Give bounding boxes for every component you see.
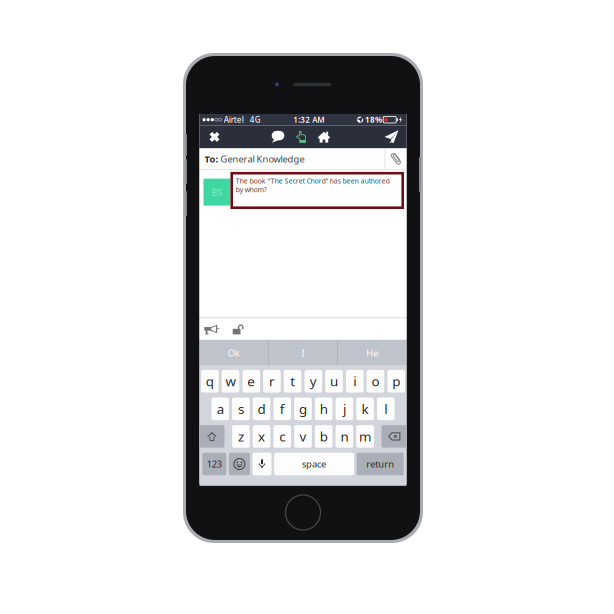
staticText: p (392, 372, 400, 390)
staticText: o (371, 372, 379, 390)
button[interactable]: z (232, 425, 250, 448)
button[interactable]: j (336, 397, 353, 420)
button[interactable]: o (367, 370, 384, 392)
button[interactable]: d (253, 397, 270, 420)
button[interactable]: He (338, 340, 406, 366)
staticText: 1:32 AM (293, 114, 324, 125)
button[interactable]: s (232, 397, 250, 420)
button[interactable]: Attach (385, 148, 406, 169)
staticText: g (299, 400, 307, 418)
button[interactable]: Close (201, 125, 227, 148)
button[interactable]: v (294, 425, 312, 448)
staticText: x (258, 427, 265, 445)
button[interactable]: Ok (200, 340, 268, 366)
staticText: e (247, 372, 255, 390)
button[interactable]: Delete (381, 425, 407, 448)
staticText: r (269, 372, 275, 390)
staticText: space (302, 458, 326, 470)
staticText: t (290, 372, 295, 390)
button[interactable]: h (315, 397, 332, 420)
button[interactable]: Broadcast (202, 319, 221, 340)
staticText: w (226, 372, 236, 390)
button[interactable]: space (274, 453, 354, 475)
button[interactable]: a (211, 397, 229, 420)
staticText: c (279, 427, 285, 445)
staticText: h (320, 400, 328, 418)
button[interactable]: g (294, 397, 312, 420)
staticText: j (343, 400, 346, 418)
button[interactable]: f (273, 397, 291, 420)
staticText: To: (204, 153, 218, 165)
staticText: The book “The Secret Chord” has been aut… (236, 176, 390, 194)
staticText: General Knowledge (218, 153, 304, 165)
button[interactable]: Like (289, 125, 312, 148)
staticText: He (366, 347, 378, 359)
staticText: a (217, 400, 224, 418)
button[interactable]: p (387, 370, 405, 392)
button[interactable]: return (357, 453, 404, 475)
button[interactable]: 123 (202, 453, 226, 475)
staticText: f (280, 400, 285, 418)
button[interactable]: l (377, 397, 395, 420)
staticText: 4G (250, 114, 261, 125)
staticText: 18% (365, 114, 382, 125)
staticText: m (359, 427, 371, 445)
button[interactable]: Emoji (229, 453, 250, 475)
staticText: y (310, 372, 317, 390)
staticText: return (366, 458, 394, 470)
button[interactable]: Unlock (229, 319, 247, 340)
button[interactable]: r (263, 370, 281, 392)
button[interactable]: I (269, 340, 337, 366)
staticText: Ok (228, 347, 240, 359)
button[interactable]: k (356, 397, 374, 420)
button[interactable]: t (284, 370, 301, 392)
staticText: z (238, 427, 244, 445)
button[interactable]: y (305, 370, 322, 392)
button[interactable]: Dictate (252, 453, 271, 475)
button[interactable]: Messages (266, 125, 289, 148)
staticText: 123 (207, 458, 222, 470)
button[interactable]: m (356, 425, 374, 448)
staticText: Airtel (224, 114, 244, 125)
button[interactable]: Shift (199, 425, 224, 448)
button[interactable]: c (273, 425, 291, 448)
button[interactable]: Send (378, 125, 404, 148)
staticText: v (299, 427, 306, 445)
staticText: d (258, 400, 266, 418)
button[interactable]: w (222, 370, 239, 392)
staticText: s (238, 400, 244, 418)
button[interactable]: b (315, 425, 332, 448)
staticText: n (340, 427, 348, 445)
staticText: l (384, 400, 387, 418)
staticText: k (362, 400, 369, 418)
staticText: i (353, 372, 356, 390)
staticText: q (206, 372, 214, 390)
button[interactable]: x (253, 425, 270, 448)
button[interactable]: i (346, 370, 364, 392)
button[interactable]: n (336, 425, 353, 448)
button[interactable]: Home (312, 125, 335, 148)
staticText: I (301, 347, 304, 359)
button[interactable]: u (325, 370, 343, 392)
staticText: b (320, 427, 328, 445)
staticText: u (330, 372, 338, 390)
staticText: BS (211, 186, 222, 198)
button[interactable]: e (242, 370, 260, 392)
button[interactable]: q (201, 370, 219, 392)
